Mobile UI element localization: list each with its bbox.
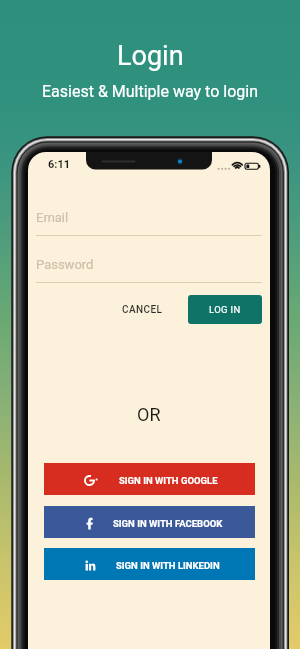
staticText: CANCEL xyxy=(122,304,163,316)
button[interactable]: LOG IN xyxy=(188,295,262,324)
staticText: Login xyxy=(117,40,184,72)
staticText: SIGN IN WITH GOOGLE xyxy=(119,475,218,486)
button[interactable]: CANCEL xyxy=(114,295,170,324)
staticText: SIGN IN WITH LINKEDIN xyxy=(116,560,220,571)
button[interactable]: SIGN IN WITH FACEBOOK xyxy=(44,506,255,538)
staticText: LOG IN xyxy=(209,304,241,315)
button[interactable]: Email xyxy=(36,204,262,236)
button[interactable]: Password xyxy=(36,251,262,283)
staticText: Easiest & Multiple way to login xyxy=(42,82,258,101)
button[interactable]: SIGN IN WITH GOOGLE xyxy=(44,463,255,495)
staticText: Password xyxy=(36,257,94,272)
staticText: SIGN IN WITH FACEBOOK xyxy=(113,518,223,529)
button[interactable]: SIGN IN WITH LINKEDIN xyxy=(44,548,255,580)
staticText: 6:11 xyxy=(48,158,71,171)
staticText: Email xyxy=(36,210,69,225)
staticText: OR xyxy=(137,404,161,425)
